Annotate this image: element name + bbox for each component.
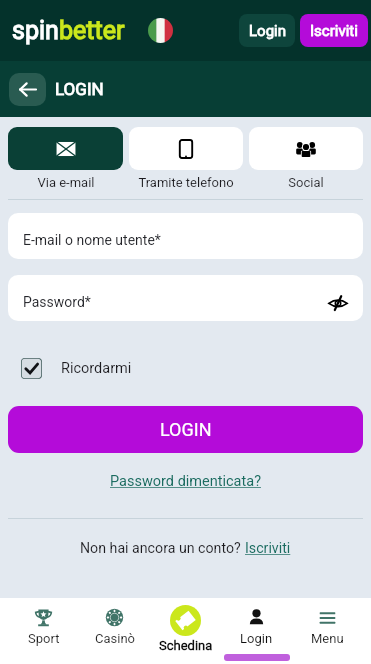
button[interactable]: Back: [9, 73, 46, 106]
button[interactable]: Ricordarmi: [21, 358, 371, 379]
button[interactable]: Casinò: [79, 598, 150, 664]
button[interactable]: Iscriviti: [300, 14, 368, 47]
button[interactable]: Login: [239, 14, 295, 47]
button[interactable]: E-mail o nome utente*: [8, 213, 363, 259]
staticText: Sport: [28, 631, 60, 646]
staticText: Tramite telefono: [138, 175, 234, 190]
button[interactable]: Menu: [292, 598, 363, 664]
staticText: Iscriviti: [310, 22, 358, 40]
button[interactable]: Password*: [8, 275, 363, 321]
button[interactable]: Tramite telefono: [129, 127, 243, 190]
staticText: spin: [12, 16, 59, 45]
staticText: Non hai ancora un conto?: [80, 540, 245, 557]
staticText: Social: [288, 175, 324, 190]
staticText: LOGIN: [55, 79, 104, 99]
button[interactable]: Login: [221, 598, 292, 664]
button[interactable]: Iscriviti: [245, 540, 291, 557]
staticText: LOGIN: [160, 419, 212, 440]
button[interactable]: Show password: [326, 286, 350, 310]
button[interactable]: LOGIN: [8, 406, 363, 453]
staticText: Menu: [311, 631, 344, 646]
staticText: Schedina: [159, 638, 213, 653]
button[interactable]: Password dimenticata?: [110, 473, 261, 490]
staticText: Login: [249, 22, 286, 40]
staticText: Casinò: [95, 631, 135, 646]
button[interactable]: Sport: [8, 598, 79, 664]
staticText: Password*: [23, 294, 91, 310]
button[interactable]: Schedina: [150, 598, 221, 664]
staticText: Via e-mail: [37, 175, 95, 190]
button[interactable]: Social: [249, 127, 363, 190]
staticText: Login: [240, 631, 273, 646]
button[interactable]: Via e-mail: [8, 127, 123, 190]
staticText: E-mail o nome utente*: [23, 232, 161, 248]
staticText: better: [59, 16, 125, 45]
staticText: Ricordarmi: [61, 360, 132, 377]
